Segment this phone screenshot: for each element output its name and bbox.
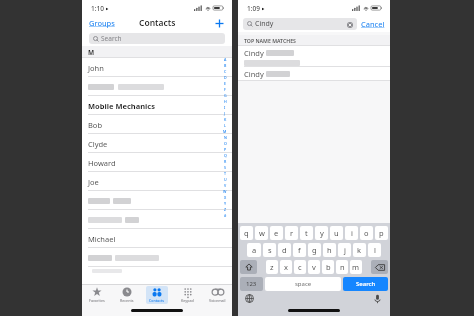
button[interactable]: s bbox=[263, 243, 276, 257]
staticText: B bbox=[224, 63, 227, 68]
staticText: Favorites bbox=[89, 298, 105, 303]
button[interactable]: Alphabet index bbox=[223, 57, 227, 219]
button[interactable] bbox=[82, 77, 232, 96]
button[interactable]: r bbox=[285, 226, 298, 240]
button[interactable]: Contacts bbox=[142, 284, 172, 306]
button[interactable]: a bbox=[247, 243, 261, 257]
button[interactable] bbox=[82, 267, 232, 275]
button[interactable]: y bbox=[315, 226, 328, 240]
button[interactable]: Favorites bbox=[82, 284, 112, 306]
button[interactable]: Michael bbox=[82, 229, 232, 248]
staticText: d bbox=[282, 245, 287, 255]
button[interactable]: Cindy bbox=[238, 46, 390, 67]
staticText: P bbox=[224, 147, 227, 152]
button[interactable]: 123 bbox=[240, 277, 263, 291]
staticText: Z bbox=[224, 207, 227, 212]
button[interactable]: Search bbox=[343, 277, 388, 291]
button[interactable]: Add contact bbox=[214, 18, 225, 29]
button[interactable]: q bbox=[240, 226, 253, 240]
staticText: Q bbox=[224, 153, 227, 158]
staticText: Contacts bbox=[149, 298, 165, 303]
button[interactable]: Cindy bbox=[243, 18, 357, 30]
staticText: Cindy bbox=[244, 69, 264, 79]
staticText: K bbox=[224, 117, 227, 122]
button[interactable]: Voicemail bbox=[202, 284, 232, 306]
staticText: Cindy bbox=[244, 48, 264, 58]
button[interactable]: f bbox=[293, 243, 306, 257]
button[interactable]: Groups bbox=[89, 18, 115, 28]
button[interactable]: Mobile Mechanics bbox=[82, 96, 232, 115]
button[interactable]: e bbox=[270, 226, 283, 240]
button[interactable]: h bbox=[323, 243, 336, 257]
button[interactable]: u bbox=[330, 226, 343, 240]
button[interactable]: l bbox=[368, 243, 381, 257]
button[interactable]: v bbox=[308, 260, 320, 274]
button[interactable]: Joe bbox=[82, 172, 232, 191]
staticText: L bbox=[224, 123, 226, 128]
button[interactable]: Howard bbox=[82, 153, 232, 172]
button[interactable]: i bbox=[345, 226, 358, 240]
staticText: o bbox=[364, 228, 369, 238]
button[interactable] bbox=[82, 248, 232, 267]
button[interactable]: p bbox=[375, 226, 388, 240]
staticText: I bbox=[224, 105, 226, 110]
button[interactable]: k bbox=[353, 243, 366, 257]
staticText: Howard bbox=[88, 158, 116, 168]
staticText: g bbox=[312, 245, 317, 255]
staticText: V bbox=[224, 183, 227, 188]
button[interactable]: n bbox=[336, 260, 348, 274]
button[interactable]: d bbox=[278, 243, 291, 257]
button[interactable]: Dictate bbox=[372, 293, 383, 304]
button[interactable]: z bbox=[266, 260, 278, 274]
button[interactable]: j bbox=[338, 243, 351, 257]
staticText: z bbox=[270, 262, 274, 272]
staticText: O bbox=[224, 141, 227, 146]
button[interactable]: space bbox=[265, 277, 341, 291]
button[interactable]: Keypad bbox=[172, 284, 202, 306]
staticText: W bbox=[223, 189, 227, 194]
button[interactable]: Search bbox=[89, 33, 225, 44]
staticText: J bbox=[224, 111, 226, 116]
button[interactable]: m bbox=[350, 260, 362, 274]
button[interactable]: w bbox=[255, 226, 268, 240]
staticText: j bbox=[344, 245, 346, 255]
button[interactable]: Cindy bbox=[238, 67, 390, 81]
staticText: 1:09 bbox=[247, 4, 260, 13]
staticText: h bbox=[327, 245, 332, 255]
staticText: R bbox=[224, 159, 227, 164]
staticText: w bbox=[259, 228, 265, 238]
staticText: t bbox=[305, 228, 308, 238]
button[interactable]: Clyde bbox=[82, 134, 232, 153]
button[interactable]: Cancel bbox=[361, 19, 385, 29]
button[interactable]: Change keyboard bbox=[244, 293, 255, 304]
staticText: y bbox=[320, 228, 324, 238]
button[interactable]: Clear text bbox=[346, 21, 353, 28]
staticText: n bbox=[340, 262, 345, 272]
button[interactable]: Bob bbox=[82, 115, 232, 134]
button[interactable]: o bbox=[360, 226, 373, 240]
button[interactable] bbox=[82, 191, 232, 210]
staticText: U bbox=[224, 177, 227, 182]
staticText: r bbox=[290, 228, 294, 238]
button[interactable]: Shift bbox=[240, 260, 257, 274]
button[interactable]: t bbox=[300, 226, 313, 240]
staticText: x bbox=[284, 262, 288, 272]
staticText: Voicemail bbox=[209, 298, 226, 303]
staticText: Y bbox=[224, 201, 227, 206]
button[interactable]: x bbox=[280, 260, 292, 274]
staticText: u bbox=[334, 228, 339, 238]
button[interactable]: c bbox=[294, 260, 306, 274]
staticText: 123 bbox=[246, 280, 257, 288]
staticText: v bbox=[312, 262, 316, 272]
staticText: l bbox=[374, 245, 376, 255]
button[interactable]: g bbox=[308, 243, 321, 257]
staticText: John bbox=[88, 63, 104, 73]
button[interactable]: Recents bbox=[112, 284, 142, 306]
staticText: f bbox=[298, 245, 301, 255]
button[interactable]: Backspace bbox=[371, 260, 388, 274]
button[interactable]: John bbox=[82, 58, 232, 77]
staticText: q bbox=[244, 228, 249, 238]
button[interactable] bbox=[82, 210, 232, 229]
button[interactable]: b bbox=[322, 260, 334, 274]
staticText: p bbox=[379, 228, 384, 238]
